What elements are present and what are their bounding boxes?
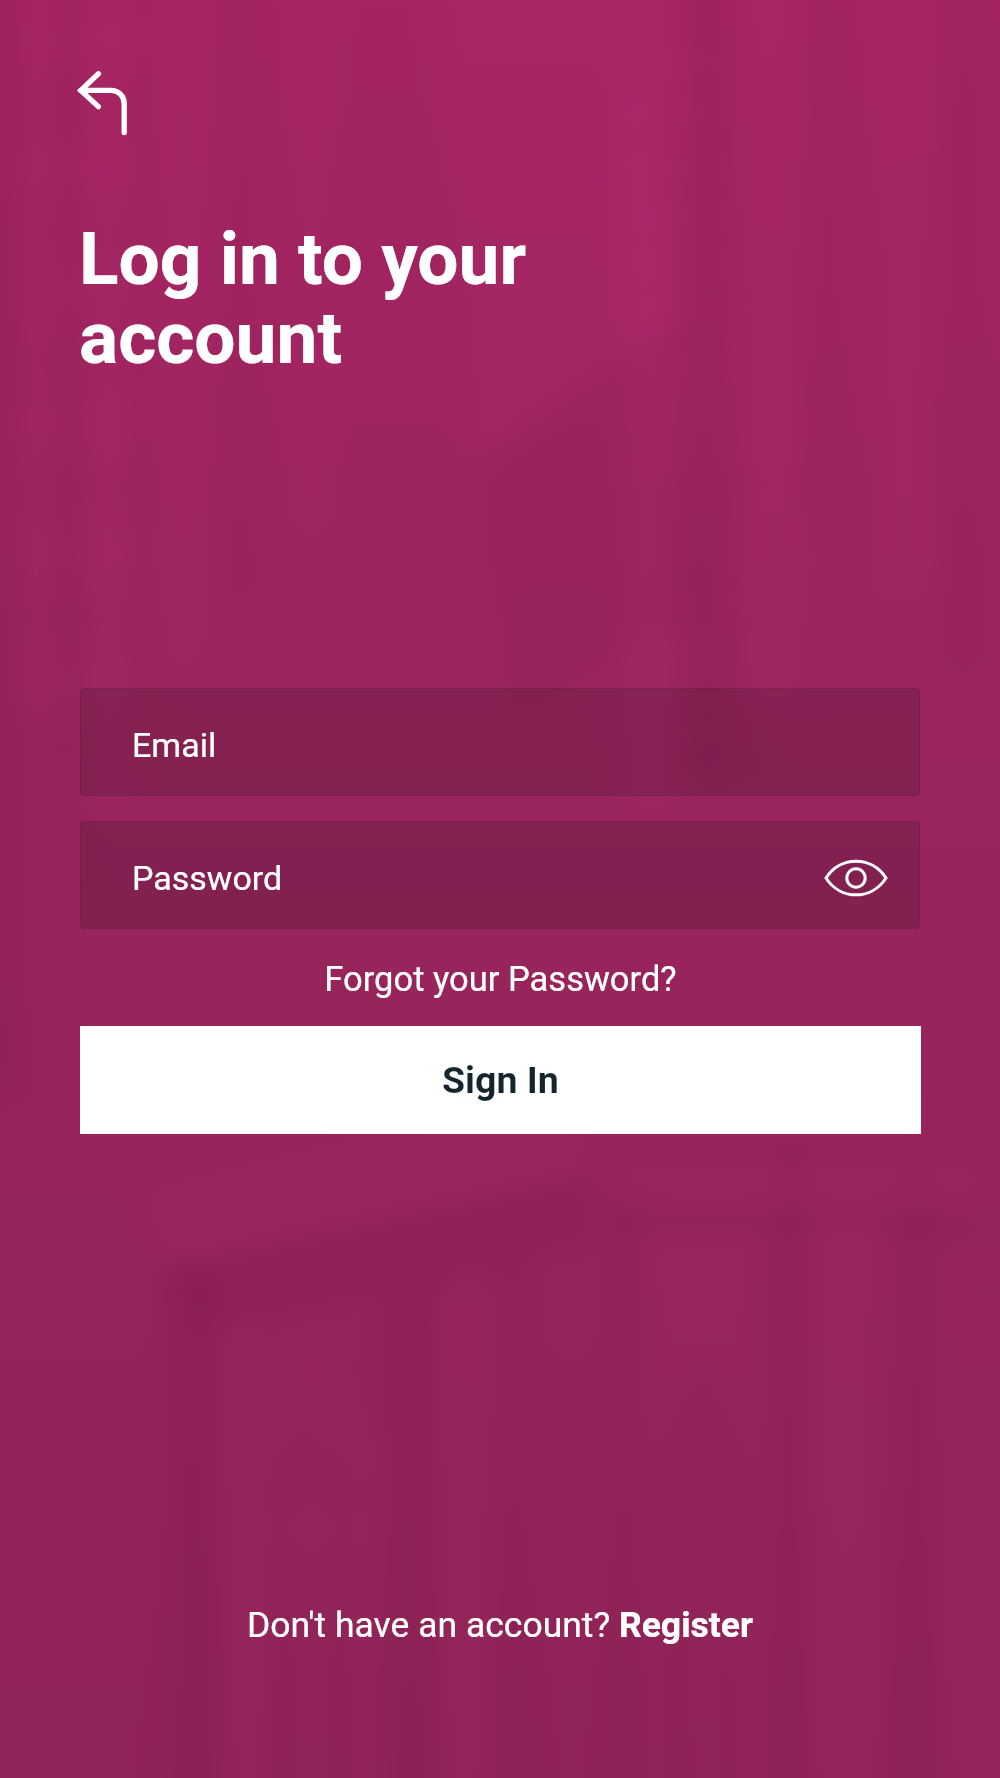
staticText: Sign In (442, 1058, 559, 1102)
staticText: Don't have an account? Register (247, 1604, 753, 1646)
staticText: Forgot your Password? (324, 959, 677, 999)
staticText: Log in to your account (79, 216, 527, 381)
button[interactable]: Password (80, 821, 920, 929)
button[interactable]: Show password (812, 831, 900, 919)
staticText: Email (132, 725, 217, 765)
button[interactable]: Don't have an account? Register (0, 1590, 1000, 1660)
button[interactable]: Email (80, 688, 920, 796)
staticText: Password (132, 858, 283, 898)
button[interactable]: Forgot your Password? (0, 943, 1000, 1015)
button[interactable]: Sign In (80, 1026, 921, 1134)
button[interactable]: Back (58, 50, 150, 142)
